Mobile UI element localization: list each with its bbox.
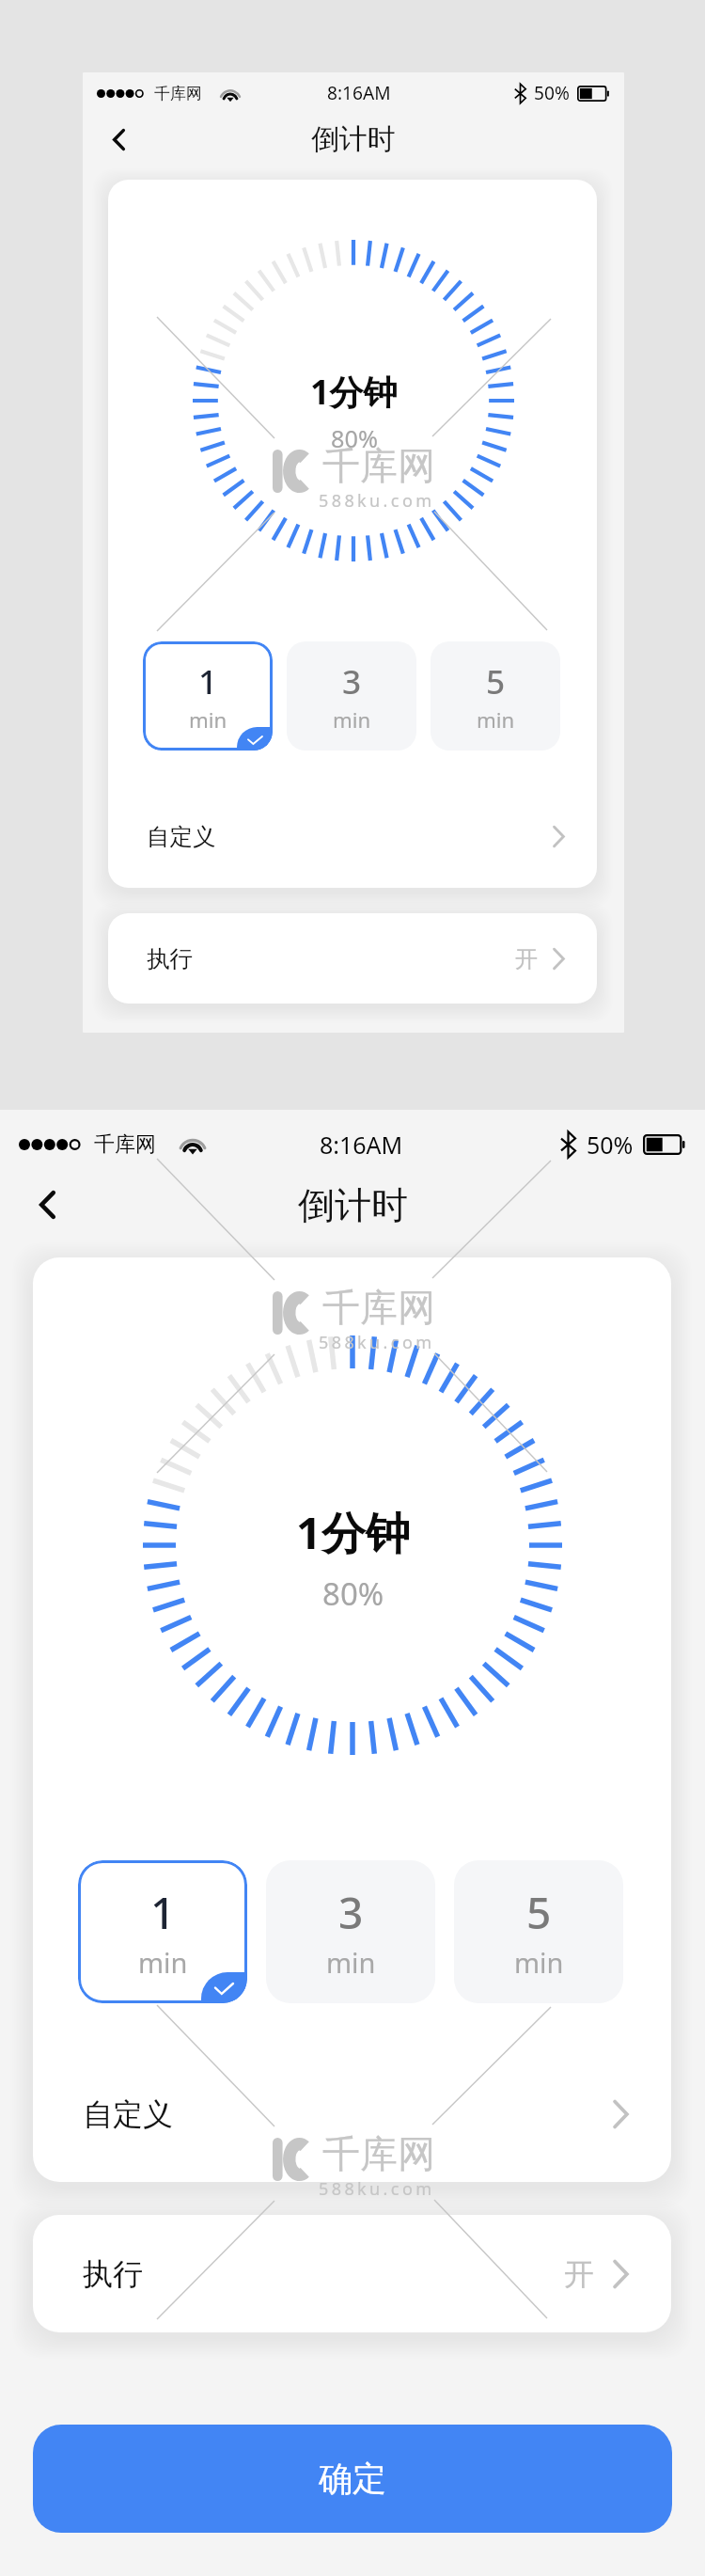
staticText: 50% [587, 1129, 634, 1161]
staticText: 确定 [319, 2457, 386, 2500]
staticText: 执行 [147, 944, 193, 973]
staticText: 千库网 [94, 1131, 156, 1158]
staticText: min [477, 705, 515, 734]
staticText: 1 [198, 658, 218, 703]
button[interactable]: 确定 [33, 2425, 672, 2533]
staticText: 执行 [83, 2255, 143, 2293]
button[interactable]: 自定义 [108, 784, 597, 888]
staticText: 1分钟 [296, 1502, 410, 1562]
button[interactable]: 5 [431, 641, 560, 751]
staticText: 开 [515, 944, 539, 973]
staticText: 588ku.com [319, 1331, 435, 1354]
button[interactable]: Back [21, 1177, 73, 1233]
button[interactable]: 3 [266, 1860, 435, 2003]
staticText: 千库网 [154, 84, 202, 103]
staticText: 5 [526, 1883, 552, 1942]
staticText: 3 [338, 1883, 364, 1942]
staticText: min [333, 705, 371, 734]
staticText: 588ku.com [319, 2177, 435, 2201]
button[interactable]: 1 [143, 641, 273, 751]
staticText: 千库网 [322, 442, 435, 489]
staticText: min [514, 1944, 564, 1981]
staticText: 80% [322, 1572, 384, 1615]
staticText: 8:16AM [327, 81, 391, 105]
staticText: 5 [486, 658, 506, 703]
staticText: min [326, 1944, 376, 1981]
staticText: 1分钟 [310, 369, 398, 415]
staticText: min [189, 705, 227, 734]
staticText: 588ku.com [319, 489, 435, 513]
button[interactable]: 5 [454, 1860, 623, 2003]
staticText: 8:16AM [320, 1129, 403, 1161]
button[interactable]: Back [99, 118, 139, 161]
staticText: 自定义 [83, 2095, 173, 2133]
staticText: 千库网 [322, 2130, 435, 2177]
staticText: 50% [534, 81, 570, 105]
staticText: 3 [342, 658, 362, 703]
button[interactable]: 3 [287, 641, 416, 751]
button[interactable]: 1 [78, 1860, 247, 2003]
staticText: min [138, 1944, 188, 1981]
staticText: 倒计时 [311, 121, 396, 157]
staticText: 倒计时 [298, 1182, 408, 1228]
staticText: 1 [150, 1883, 176, 1942]
staticText: 千库网 [322, 1284, 435, 1331]
button[interactable]: 执行 [33, 2215, 671, 2332]
button[interactable]: 自定义 [33, 2047, 671, 2182]
staticText: 80% [331, 422, 378, 454]
staticText: 开 [564, 2255, 594, 2293]
button[interactable]: 执行 [108, 913, 597, 1004]
staticText: 自定义 [147, 822, 216, 851]
